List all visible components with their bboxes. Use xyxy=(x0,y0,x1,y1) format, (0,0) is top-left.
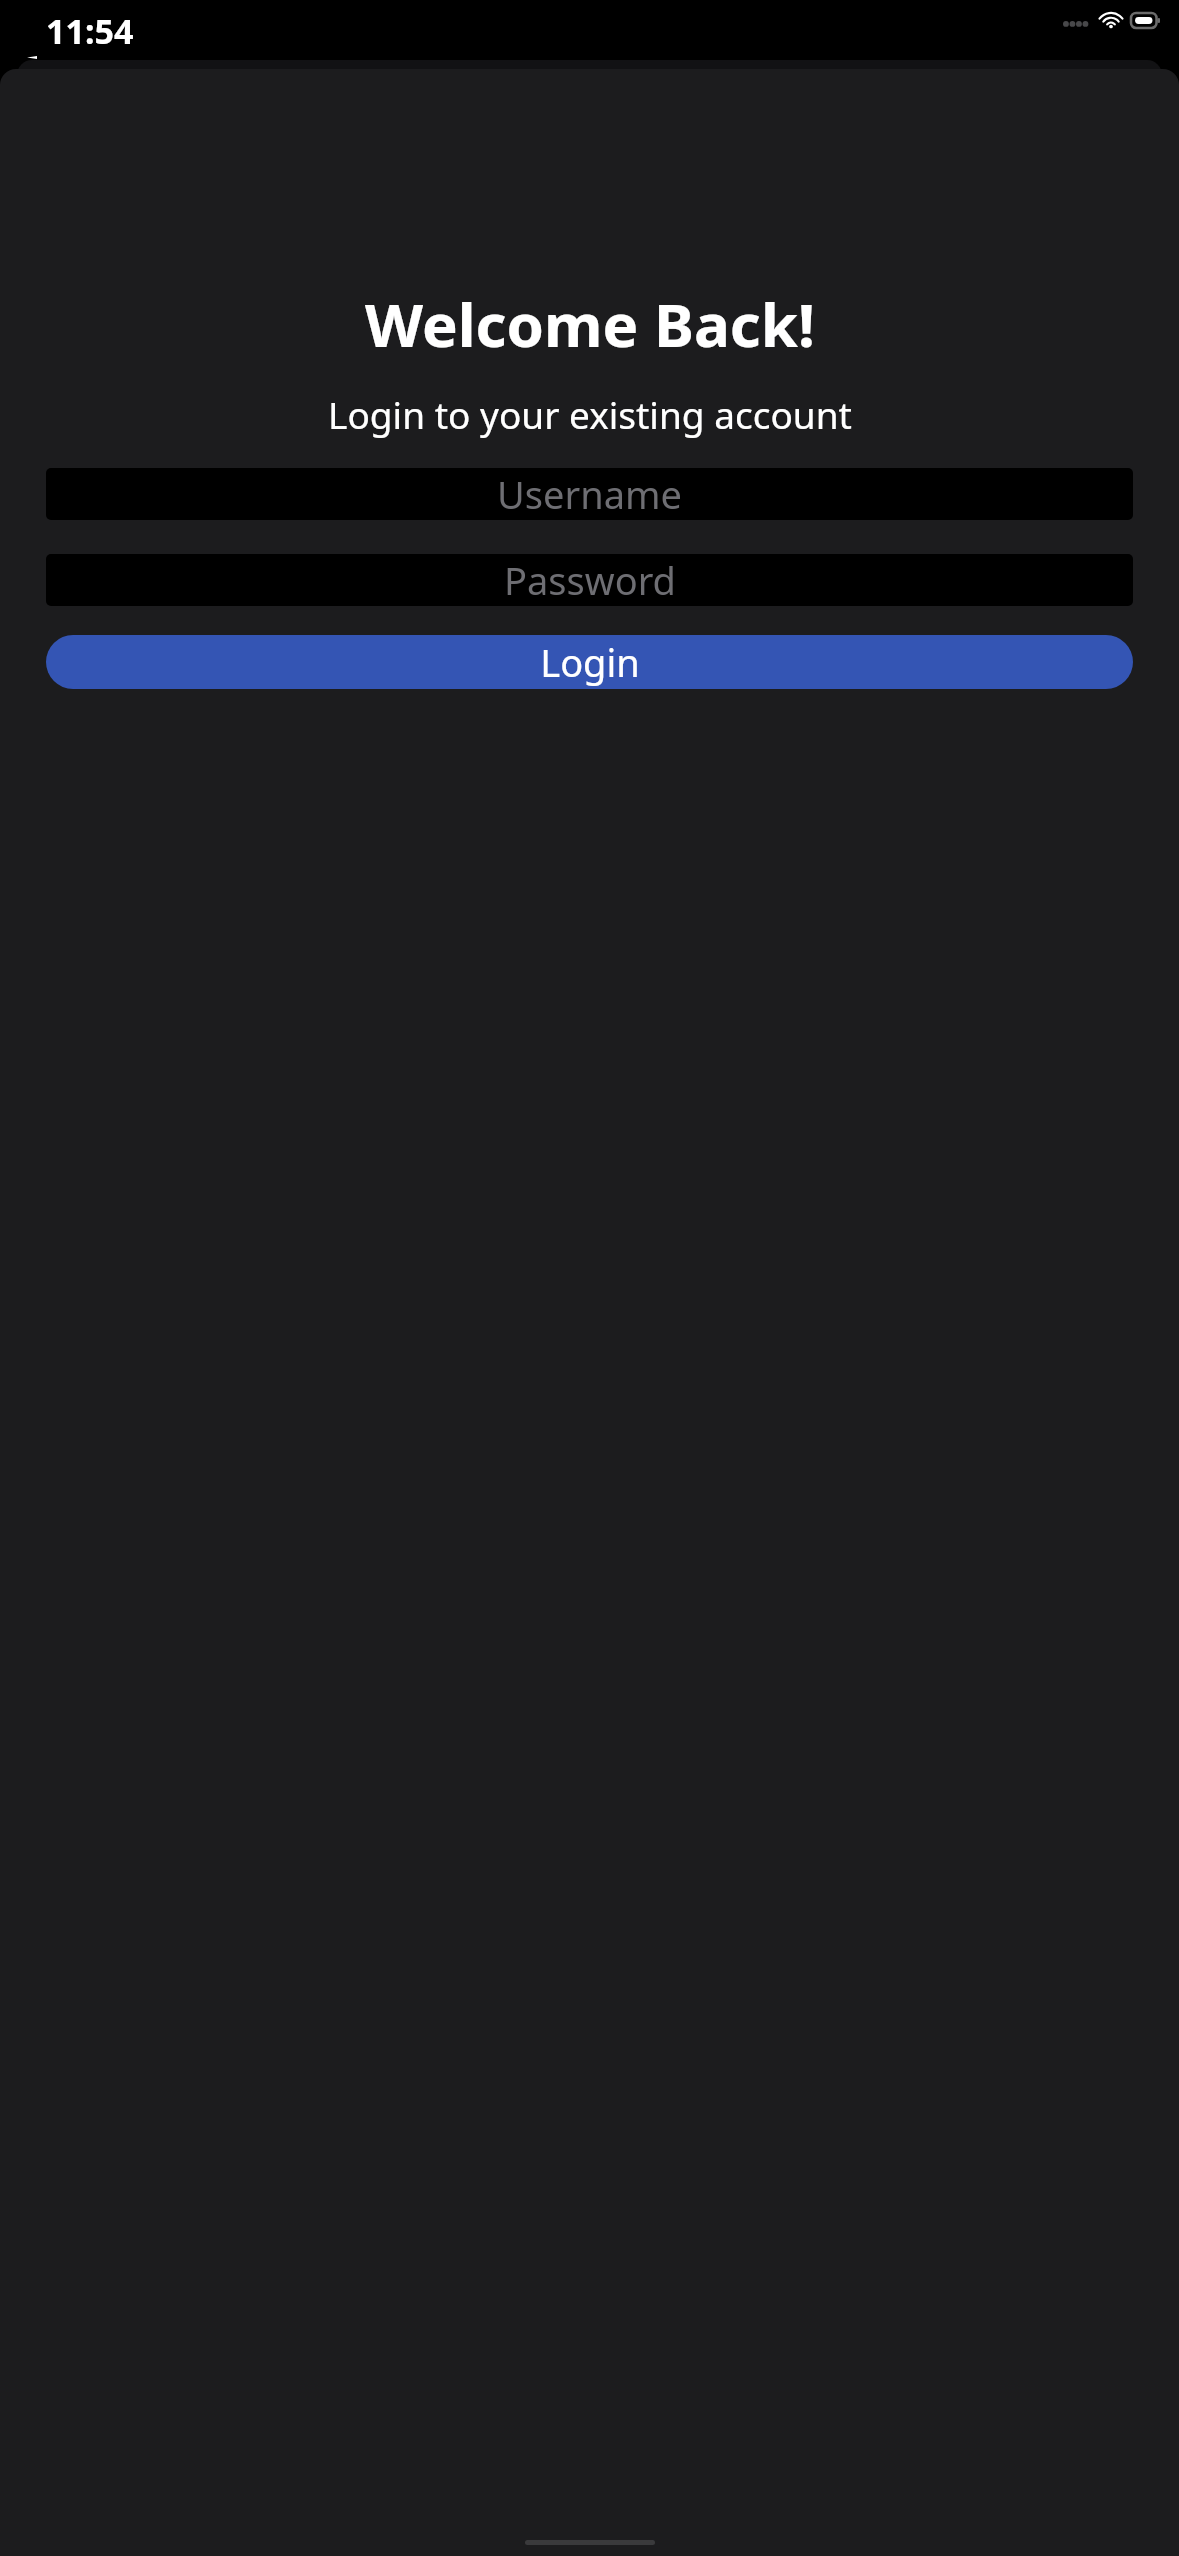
staticText: Login xyxy=(540,636,640,688)
button[interactable]: Password xyxy=(46,554,1133,606)
button[interactable]: Username xyxy=(46,468,1133,520)
staticText: Welcome Back! xyxy=(365,283,815,365)
staticText: Password xyxy=(504,554,676,606)
staticText: Login to your existing account xyxy=(328,389,852,439)
button[interactable]: Login xyxy=(46,635,1133,689)
staticText: 11:54 xyxy=(46,8,134,54)
staticText: Username xyxy=(497,468,682,520)
